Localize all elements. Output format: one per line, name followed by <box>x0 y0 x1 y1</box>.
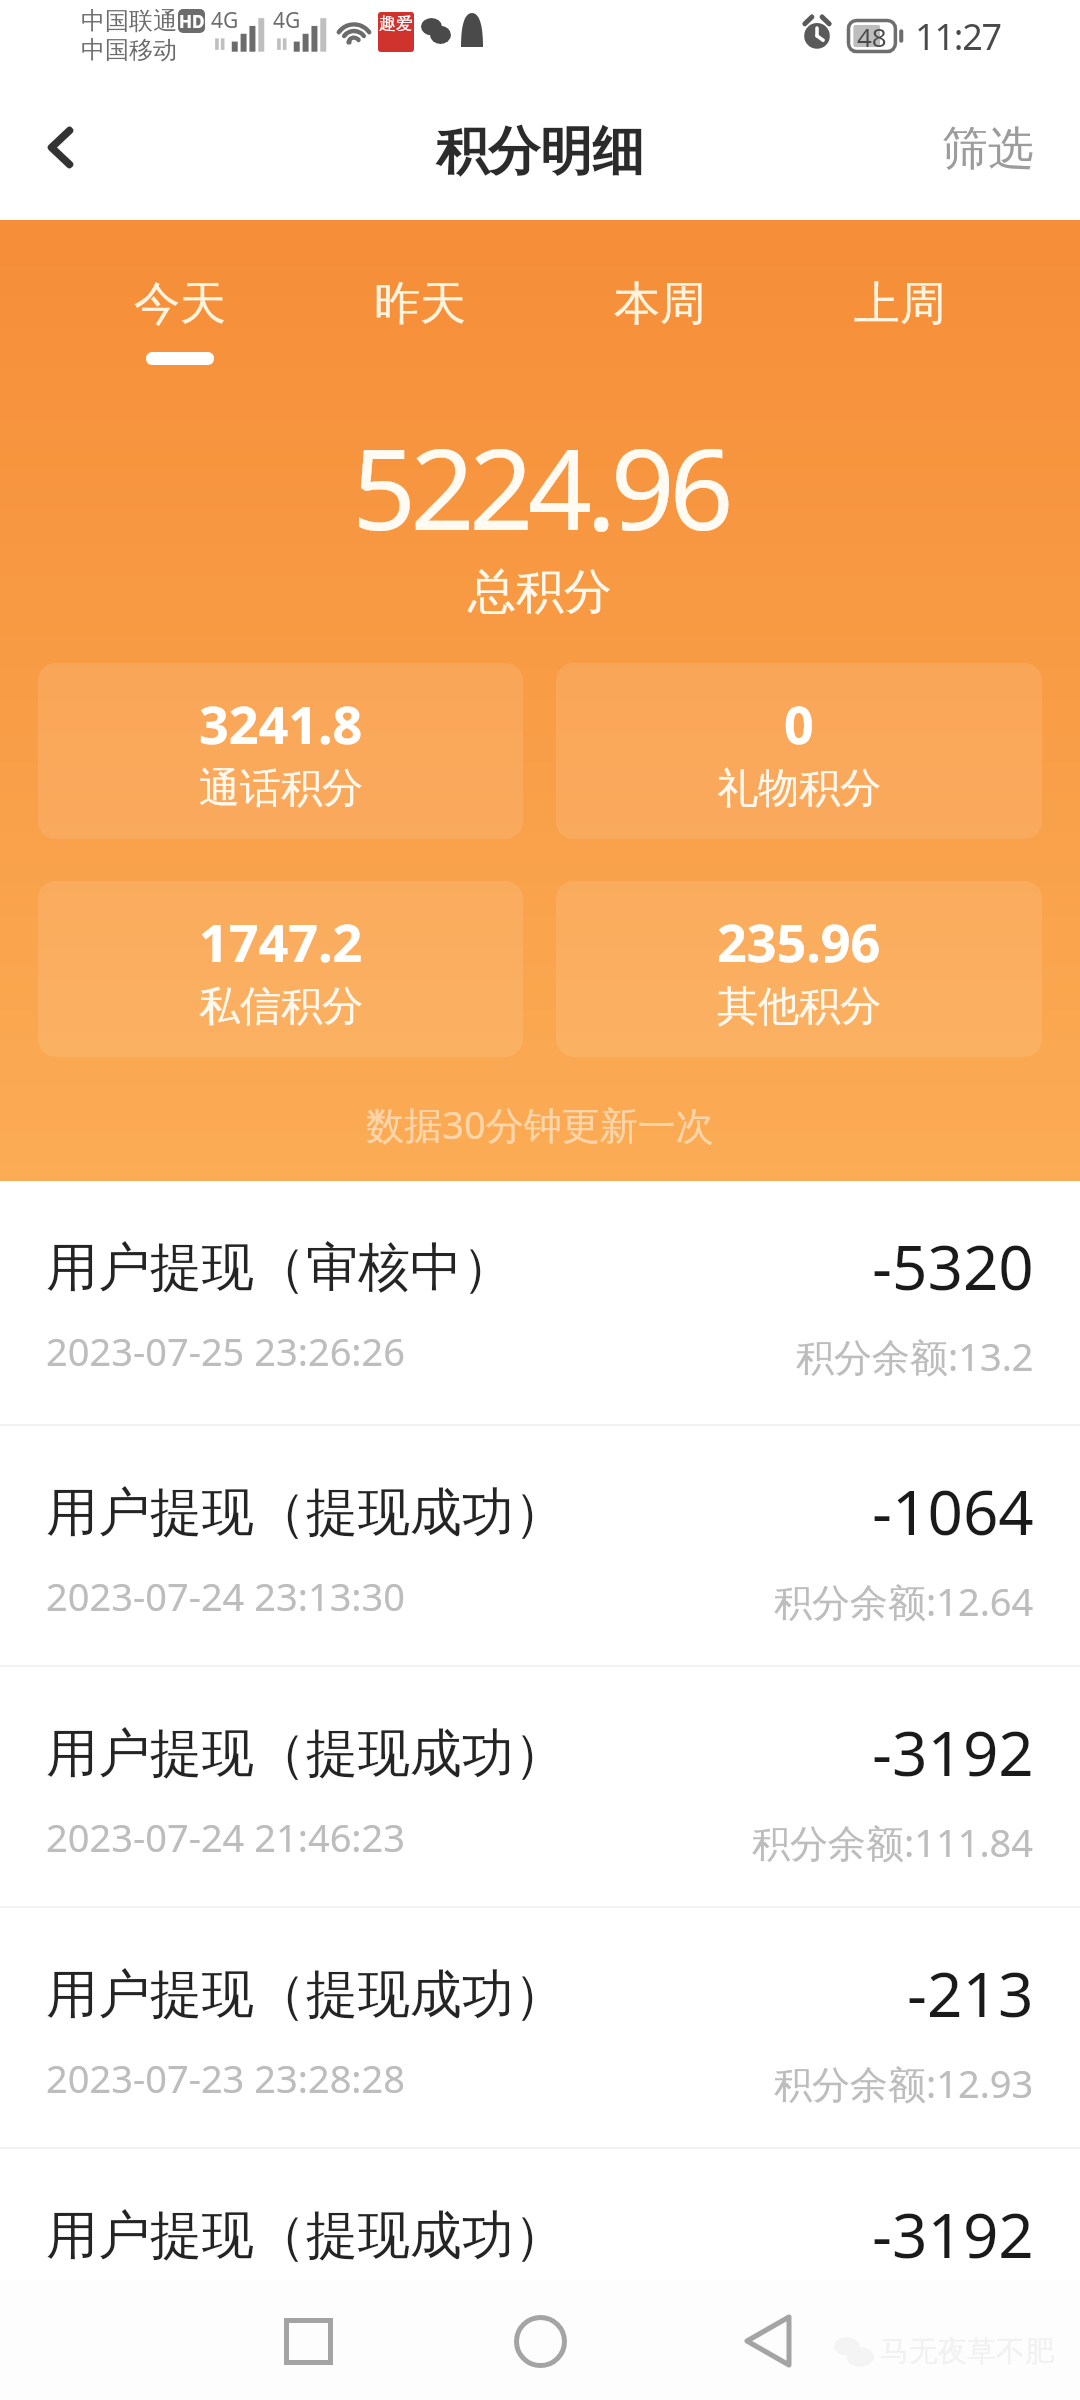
staticText: 2023-07-24 21:46:23 <box>46 1811 406 1863</box>
button[interactable]: 上周 <box>780 275 1020 352</box>
staticText: 用户提现（提现成功） <box>46 2203 566 2269</box>
staticText: 昨天 <box>374 275 466 333</box>
staticText: 用户提现（提现成功） <box>46 1721 566 1787</box>
button[interactable]: Back <box>18 105 102 189</box>
staticText: 0 <box>784 688 814 759</box>
button[interactable]: 1747.2 <box>38 881 523 1057</box>
staticText: 中国移动 <box>81 35 177 65</box>
button[interactable]: 用户提现（审核中） <box>0 1181 1080 1424</box>
staticText: HD <box>179 10 205 33</box>
staticText: 私信积分 <box>199 981 363 1033</box>
staticText: 通话积分 <box>199 763 363 815</box>
staticText: 马无夜草不肥 <box>880 2333 1054 2370</box>
button[interactable]: 本周 <box>540 275 780 352</box>
staticText: 上周 <box>854 275 946 333</box>
button[interactable]: 昨天 <box>300 275 540 352</box>
staticText: 用户提现（提现成功） <box>46 1962 566 2028</box>
staticText: 今天 <box>134 275 226 333</box>
button[interactable]: 用户提现（提现成功） <box>0 2149 1080 2388</box>
button[interactable]: 0 <box>556 663 1042 839</box>
staticText: 中国联通 <box>81 6 177 36</box>
staticText: 用户提现（提现成功） <box>46 1480 566 1546</box>
staticText: -3192 <box>872 1710 1034 1794</box>
button[interactable]: Back <box>724 2280 812 2400</box>
staticText: 4G <box>273 6 301 35</box>
button[interactable]: 用户提现（提现成功） <box>0 1908 1080 2147</box>
staticText: 2023-07-23 21:10:10 <box>46 2293 406 2345</box>
staticText: 积分余额:12.93 <box>774 2057 1034 2109</box>
staticText: 48 <box>857 19 887 53</box>
staticText: 筛选 <box>942 120 1034 178</box>
button[interactable]: 3241.8 <box>38 663 523 839</box>
staticText: 5224.96 <box>0 410 1080 563</box>
button[interactable]: 筛选 <box>918 112 1080 186</box>
staticText: 积分余额:111.84 <box>752 1816 1034 1868</box>
button[interactable]: 235.96 <box>556 881 1042 1057</box>
staticText: 1747.2 <box>199 906 363 977</box>
button[interactable]: Home <box>496 2280 584 2400</box>
staticText: 用户提现（审核中） <box>46 1235 514 1301</box>
staticText: 11:27 <box>915 12 1002 61</box>
staticText: 235.96 <box>717 906 881 977</box>
staticText: 4G <box>211 6 239 35</box>
button[interactable]: 用户提现（提现成功） <box>0 1426 1080 1665</box>
button[interactable]: 今天 <box>60 275 300 365</box>
staticText: -213 <box>907 1951 1034 2035</box>
staticText: 3241.8 <box>199 688 363 759</box>
staticText: -1064 <box>872 1469 1034 1553</box>
staticText: 礼物积分 <box>717 763 881 815</box>
staticText: 数据30分钟更新一次 <box>0 1098 1080 1150</box>
staticText: 趣爱 <box>379 13 413 34</box>
staticText: 积分余额:12.64 <box>774 1575 1034 1627</box>
staticText: 其他积分 <box>717 981 881 1033</box>
staticText: 2023-07-23 23:28:28 <box>46 2052 406 2104</box>
staticText: 积分余额:13.2 <box>796 1330 1034 1382</box>
staticText: -5320 <box>872 1224 1034 1308</box>
staticText: 总积分 <box>0 562 1080 622</box>
staticText: 积分明细 <box>0 119 1080 185</box>
button[interactable]: Recents <box>264 2280 352 2400</box>
staticText: 本周 <box>614 275 706 333</box>
staticText: -3192 <box>872 2192 1034 2276</box>
button[interactable]: 用户提现（提现成功） <box>0 1667 1080 1906</box>
staticText: 2023-07-24 23:13:30 <box>46 1570 406 1622</box>
staticText: 2023-07-25 23:26:26 <box>46 1325 406 1377</box>
